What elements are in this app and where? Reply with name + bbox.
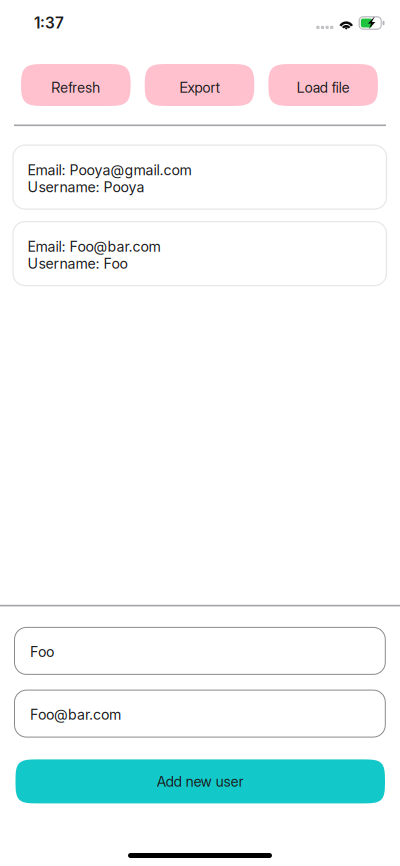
staticText: Username: Foo bbox=[27, 255, 127, 272]
button[interactable]: Export bbox=[145, 64, 254, 106]
staticText: Foo bbox=[30, 643, 54, 660]
staticText: Email: Foo@bar.com bbox=[27, 238, 160, 255]
staticText: 1:37 bbox=[34, 14, 64, 32]
staticText: Load file bbox=[297, 79, 350, 96]
staticText: Foo@bar.com bbox=[30, 706, 121, 723]
staticText: Email: Pooya@gmail.com bbox=[27, 161, 191, 179]
button[interactable]: Refresh bbox=[21, 64, 131, 106]
staticText: Add new user bbox=[157, 773, 244, 790]
staticText: Username: Pooya bbox=[27, 179, 144, 196]
staticText: Export bbox=[179, 79, 219, 96]
button[interactable]: Load file bbox=[268, 64, 378, 106]
staticText: Refresh bbox=[51, 79, 100, 96]
button[interactable]: Add new user bbox=[15, 759, 385, 803]
